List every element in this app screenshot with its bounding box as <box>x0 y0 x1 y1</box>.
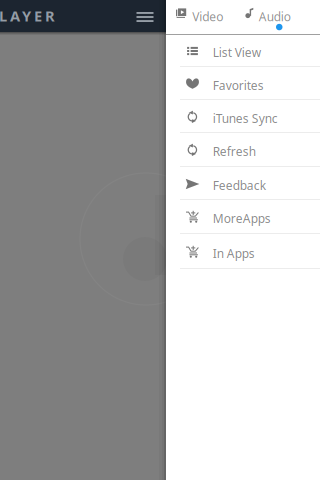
staticText: In Apps <box>213 245 255 261</box>
button[interactable]: List View <box>166 34 320 67</box>
staticText: Refresh <box>213 143 256 159</box>
staticText: List View <box>213 44 261 60</box>
staticText: Favorites <box>213 77 264 93</box>
staticText: MoreApps <box>213 210 271 226</box>
staticText: Feedback <box>213 177 266 193</box>
button[interactable]: Favorites <box>166 67 320 100</box>
button[interactable]: In Apps <box>166 234 320 269</box>
button[interactable]: Refresh <box>166 133 320 167</box>
button[interactable]: Menu <box>130 4 160 30</box>
button[interactable]: Video <box>176 0 234 34</box>
staticText: Video <box>192 9 223 24</box>
button[interactable]: Audio <box>244 0 302 34</box>
button[interactable]: iTunes Sync <box>166 100 320 133</box>
staticText: LAYER <box>0 6 55 25</box>
staticText: Audio <box>259 9 291 24</box>
button[interactable]: Feedback <box>166 167 320 200</box>
staticText: iTunes Sync <box>213 110 278 126</box>
button[interactable]: MoreApps <box>166 200 320 234</box>
